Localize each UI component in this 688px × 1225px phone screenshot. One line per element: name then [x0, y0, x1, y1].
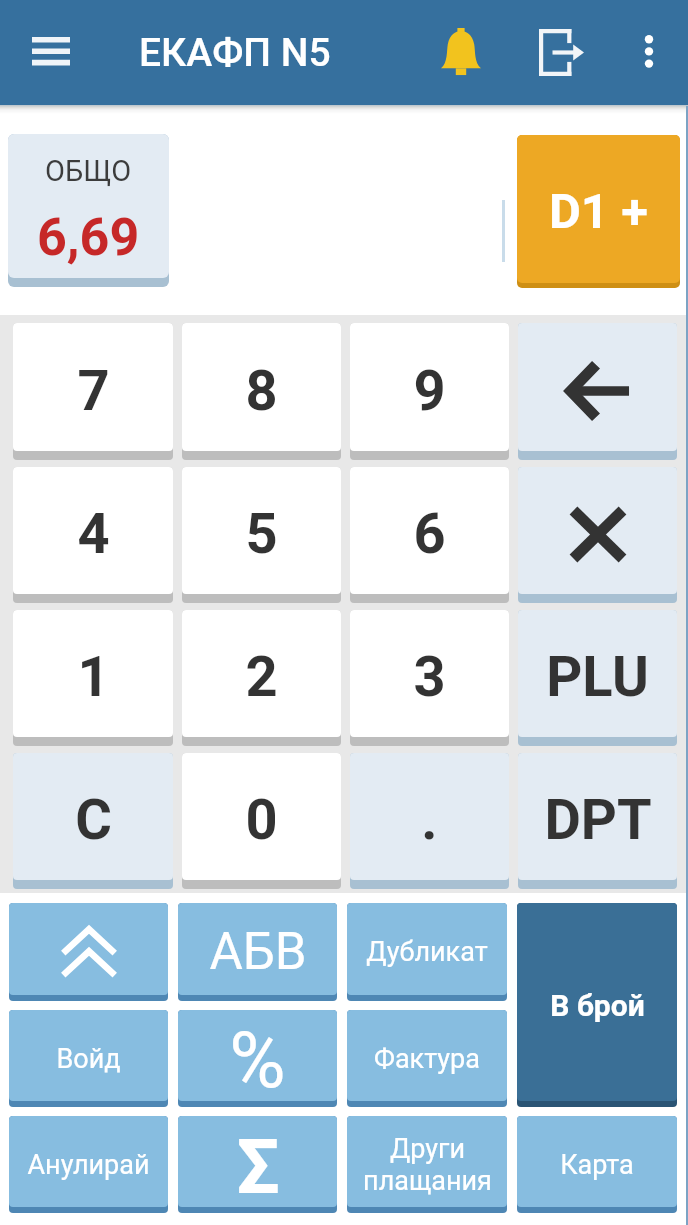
staticText: D1 + [549, 183, 648, 240]
staticText: В брой [550, 988, 645, 1023]
button[interactable]: Карта [517, 1116, 677, 1213]
staticText: Други плащания [363, 1133, 492, 1197]
button[interactable]: Expand [9, 903, 168, 1001]
staticText: Дубликат [366, 936, 488, 968]
staticText: ЕКАФП N5 [139, 30, 331, 76]
button[interactable]: 0 [182, 753, 341, 889]
button[interactable]: Фактура [347, 1010, 507, 1107]
staticText: Σ [236, 1122, 280, 1207]
button[interactable]: 9 [350, 323, 509, 460]
button[interactable]: 1 [13, 610, 173, 746]
button[interactable]: 5 [182, 467, 341, 603]
button[interactable]: 8 [182, 323, 341, 460]
button[interactable]: Menu [16, 16, 86, 86]
staticText: Карта [560, 1149, 634, 1181]
staticText: DPT [544, 787, 652, 853]
button[interactable]: 4 [13, 467, 173, 603]
staticText: Войд [56, 1043, 121, 1075]
staticText: 2 [245, 644, 278, 710]
staticText: Анулирай [27, 1149, 150, 1181]
button[interactable]: C [13, 753, 173, 889]
staticText: 3 [413, 644, 446, 710]
button[interactable]: Multiply [518, 467, 677, 603]
staticText: ОБЩО [45, 154, 132, 188]
button[interactable]: Войд [9, 1010, 168, 1107]
button[interactable]: % [178, 1010, 337, 1107]
button[interactable]: PLU [518, 610, 677, 746]
button[interactable]: 2 [182, 610, 341, 746]
staticText: % [229, 1016, 286, 1101]
button[interactable]: 7 [13, 323, 173, 460]
button[interactable]: Анулирай [9, 1116, 168, 1213]
button[interactable]: Logout [525, 16, 598, 89]
staticText: 4 [77, 501, 110, 567]
staticText: АБВ [209, 922, 307, 982]
other: Expand [60, 926, 118, 978]
other: Backspace [565, 359, 631, 423]
staticText: PLU [546, 644, 649, 710]
staticText: 1 [77, 644, 110, 710]
staticText: 6 [413, 501, 446, 567]
button[interactable]: Notifications [425, 16, 497, 88]
button[interactable]: Σ [178, 1116, 337, 1213]
button[interactable]: . [350, 753, 509, 889]
button[interactable]: Други плащания [347, 1116, 507, 1213]
staticText: . [421, 787, 438, 853]
staticText: 6,69 [37, 207, 140, 268]
button[interactable]: DPT [518, 753, 677, 889]
button[interactable]: 3 [350, 610, 509, 746]
button[interactable]: 6 [350, 467, 509, 603]
button[interactable]: В брой [517, 903, 677, 1107]
staticText: 0 [245, 787, 278, 853]
button[interactable]: Дубликат [347, 903, 507, 1001]
staticText: 8 [245, 358, 278, 424]
staticText: 7 [77, 358, 110, 424]
button[interactable]: АБВ [178, 903, 337, 1001]
staticText: 5 [245, 501, 278, 567]
button[interactable]: More options [613, 16, 685, 88]
staticText: Фактура [374, 1043, 480, 1075]
staticText: 9 [413, 358, 446, 424]
staticText: C [75, 787, 112, 853]
button[interactable]: Backspace [518, 323, 677, 460]
other: Multiply [568, 505, 628, 564]
